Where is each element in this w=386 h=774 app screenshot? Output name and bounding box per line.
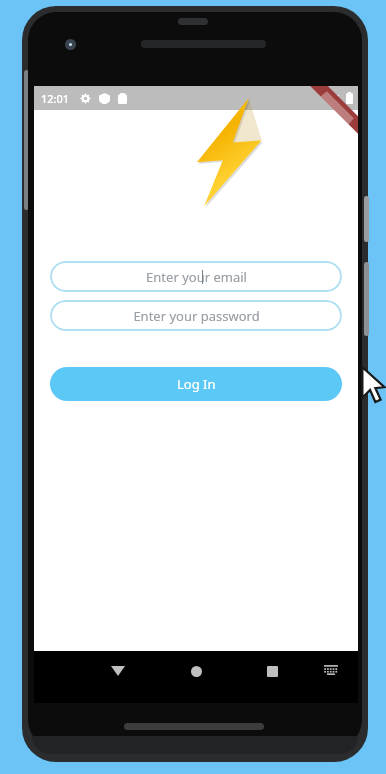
staticText: 12:01	[41, 91, 70, 106]
staticText: Enter your email	[146, 268, 247, 286]
button[interactable]: Keyboard	[316, 655, 346, 685]
button[interactable]: Back	[102, 655, 134, 687]
button[interactable]: Recent apps	[256, 655, 288, 687]
button[interactable]: Home	[180, 655, 212, 687]
button[interactable]: Enter your email	[50, 261, 342, 292]
staticText: Enter your password	[133, 307, 260, 325]
button[interactable]: Enter your password	[50, 300, 342, 331]
staticText: Log In	[177, 375, 216, 393]
button[interactable]: Log In	[50, 367, 342, 401]
